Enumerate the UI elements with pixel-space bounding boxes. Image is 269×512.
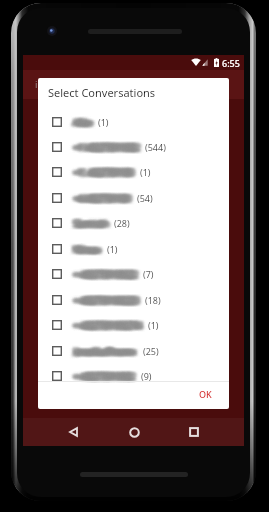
staticText: +1 4027391002 (72, 142, 135, 153)
staticText: + 4027391002 (72, 371, 131, 382)
button[interactable]: Alie (38, 109, 229, 134)
staticText: + 402739100223 (73, 295, 136, 306)
staticText: +4 402739100 (75, 193, 130, 204)
button[interactable]: Samirah (38, 210, 229, 235)
staticText: is (35, 78, 43, 91)
button[interactable]: +1. 402739100 (38, 159, 229, 184)
staticText: Samirah (78, 218, 110, 229)
staticText: +4 402739100 (78, 193, 133, 204)
button[interactable]: Ninaa (38, 236, 229, 261)
staticText: JonasKauffmanne (72, 346, 131, 357)
staticText: + 40273910022 (73, 269, 134, 280)
staticText: JonasKauffmanne (76, 346, 135, 357)
staticText: + 4027391002 (74, 371, 133, 382)
staticText: Alie (76, 117, 92, 128)
staticText: Ninaa (74, 244, 99, 255)
staticText: +1. 402739100 (77, 167, 135, 178)
staticText: + 40273910022 (74, 269, 135, 280)
button[interactable]: Recent apps (180, 418, 208, 446)
button[interactable]: Home (120, 418, 148, 446)
staticText: Alie (78, 117, 94, 128)
staticText: Samirah (72, 218, 104, 229)
button[interactable]: + 402739100274 (38, 312, 229, 337)
staticText: + 402739100274 (76, 320, 142, 331)
staticText: +1 4027391002 (78, 142, 141, 153)
staticText: +1 4027391002 (76, 142, 139, 153)
staticText: Select Conversations (48, 85, 156, 100)
staticText: +4 402739100 (74, 193, 129, 204)
button[interactable]: +1 4027391002 (38, 134, 229, 159)
staticText: + 40273910022 (77, 269, 138, 280)
staticText: + 40273910022 (74, 269, 135, 280)
staticText: (1) (98, 116, 109, 128)
staticText: +1. 402739100 (76, 167, 134, 178)
staticText: + 402739100223 (76, 295, 139, 306)
staticText: + 40273910022 (76, 269, 137, 280)
staticText: +1 4027391002 (72, 142, 135, 153)
staticText: +4 402739100 (72, 193, 127, 204)
staticText: +1. 402739100 (74, 167, 132, 178)
staticText: JonasKauffmanne (73, 346, 132, 357)
staticText: Alie (75, 117, 91, 128)
staticText: Alie (72, 117, 88, 128)
button[interactable]: + 40273910022 (38, 261, 229, 286)
staticText: Ninaa (78, 244, 103, 255)
staticText: Ninaa (77, 244, 102, 255)
staticText: +1. 402739100 (75, 167, 133, 178)
staticText: + 40273910022 (76, 269, 137, 280)
staticText: +4 402739100 (77, 193, 132, 204)
staticText: + 402739100223 (77, 295, 140, 306)
staticText: + 40273910022 (72, 269, 133, 280)
staticText: Samirah (74, 218, 106, 229)
staticText: + 4027391002 (72, 371, 131, 382)
staticText: +1 4027391002 (76, 142, 139, 153)
staticText: + 402739100274 (73, 320, 139, 331)
staticText: +1. 402739100 (72, 167, 130, 178)
staticText: + 402739100274 (74, 320, 140, 331)
staticText: (28) (114, 217, 130, 229)
staticText: +4 402739100 (73, 193, 128, 204)
staticText: + 40273910022 (78, 269, 139, 280)
staticText: +4 402739100 (72, 193, 127, 204)
staticText: Ninaa (76, 244, 101, 255)
button[interactable]: +4 402739100 (38, 185, 229, 210)
staticText: +4 402739100 (78, 193, 133, 204)
staticText: Samirah (74, 218, 106, 229)
staticText: + 40273910022 (78, 269, 139, 280)
staticText: Alie (72, 117, 88, 128)
staticText: +1. 402739100 (76, 167, 134, 178)
staticText: + 4027391002 (78, 371, 137, 382)
staticText: Alie (74, 117, 90, 128)
staticText: Ninaa (72, 244, 97, 255)
staticText: +1. 402739100 (73, 167, 131, 178)
staticText: Alie (77, 117, 93, 128)
staticText: + 402739100223 (78, 295, 141, 306)
staticText: JonasKauffmanne (76, 346, 135, 357)
staticText: JonasKauffmanne (72, 346, 131, 357)
staticText: + 40273910022 (72, 269, 133, 280)
button[interactable]: + 402739100223 (38, 287, 229, 312)
staticText: + 402739100274 (74, 320, 140, 331)
staticText: Ninaa (72, 244, 97, 255)
staticText: (7) (143, 268, 154, 280)
staticText: + 4027391002 (73, 371, 132, 382)
staticText: +1 4027391002 (75, 142, 138, 153)
staticText: Alie (74, 117, 90, 128)
staticText: + 402739100223 (72, 295, 135, 306)
staticText: + 4027391002 (77, 371, 136, 382)
button[interactable]: + 4027391002 (38, 363, 229, 388)
staticText: + 402739100274 (78, 320, 144, 331)
staticText: + 402739100274 (78, 320, 144, 331)
button[interactable]: OK (193, 385, 217, 403)
staticText: (1) (107, 243, 118, 255)
staticText: JonasKauffmanne (74, 346, 133, 357)
staticText: (18) (145, 294, 161, 306)
staticText: +4 402739100 (74, 193, 129, 204)
button[interactable]: Back (59, 418, 87, 446)
staticText: OK (199, 388, 212, 400)
staticText: Samirah (77, 218, 109, 229)
button[interactable]: JonasKauffmanne (38, 338, 229, 363)
staticText: +4 402739100 (76, 193, 131, 204)
staticText: (544) (145, 141, 166, 153)
staticText: + 4027391002 (78, 371, 137, 382)
